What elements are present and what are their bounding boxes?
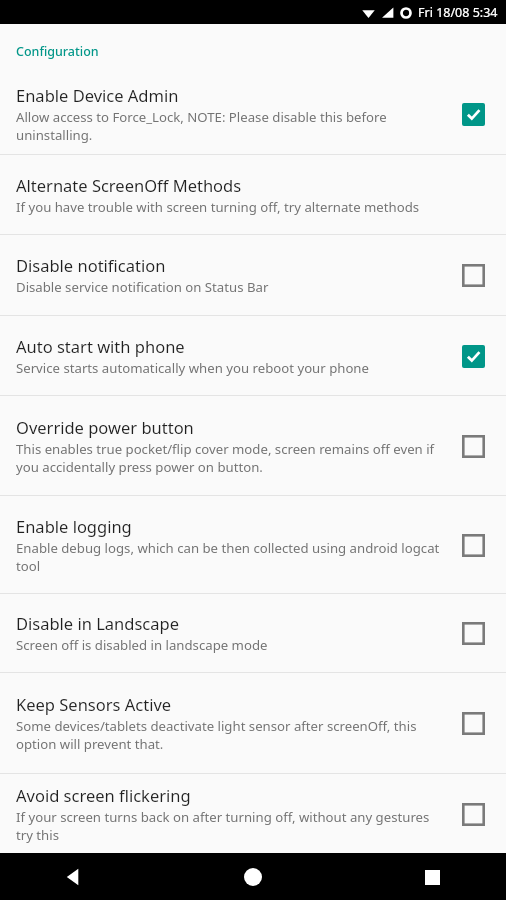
staticText: Allow access to Force_Lock, NOTE: Please…: [16, 108, 446, 144]
staticText: Enable logging: [16, 515, 132, 537]
button[interactable]: Disabled checkbox: [449, 521, 497, 569]
staticText: Configuration: [16, 43, 99, 60]
button[interactable]: Enable Device Admin: [0, 73, 506, 154]
staticText: Disable service notification on Status B…: [16, 278, 269, 296]
button[interactable]: Disable notification: [0, 235, 506, 315]
button[interactable]: Override power button: [0, 396, 506, 495]
staticText: Keep Sensors Active: [16, 693, 172, 715]
staticText: Disable in Landscape: [16, 612, 179, 634]
button[interactable]: Home: [231, 855, 275, 899]
button[interactable]: Alternate ScreenOff Methods: [0, 155, 506, 234]
button[interactable]: Keep Sensors Active: [0, 673, 506, 773]
button[interactable]: Disabled checkbox: [449, 422, 497, 470]
button[interactable]: Back: [52, 855, 96, 899]
button[interactable]: Disable in Landscape: [0, 594, 506, 672]
button[interactable]: Avoid screen flickering: [0, 774, 506, 853]
staticText: Enable Device Admin: [16, 84, 179, 106]
staticText: Service starts automatically when you re…: [16, 359, 369, 377]
button[interactable]: Disabled checkbox: [449, 790, 497, 838]
button[interactable]: Recent apps: [410, 855, 454, 899]
button[interactable]: Enable logging: [0, 496, 506, 593]
button[interactable]: Disabled checkbox: [449, 609, 497, 657]
button[interactable]: Disabled checkbox: [449, 251, 497, 299]
staticText: Auto start with phone: [16, 335, 185, 357]
staticText: Override power button: [16, 416, 194, 438]
button[interactable]: Disabled checkbox: [449, 699, 497, 747]
staticText: If your screen turns back on after turni…: [16, 808, 446, 844]
staticText: If you have trouble with screen turning …: [16, 198, 420, 216]
staticText: Fri 18/08 5:34: [418, 4, 498, 21]
staticText: Screen off is disabled in landscape mode: [16, 636, 268, 654]
staticText: Enable debug logs, which can be then col…: [16, 539, 446, 575]
staticText: Avoid screen flickering: [16, 784, 191, 806]
button[interactable]: Enabled checkbox: [449, 332, 497, 380]
button[interactable]: Enabled checkbox: [449, 90, 497, 138]
staticText: Alternate ScreenOff Methods: [16, 174, 242, 196]
staticText: Disable notification: [16, 254, 166, 276]
staticText: Some devices/tablets deactivate light se…: [16, 717, 446, 753]
button[interactable]: Auto start with phone: [0, 316, 506, 395]
staticText: This enables true pocket/flip cover mode…: [16, 440, 446, 476]
